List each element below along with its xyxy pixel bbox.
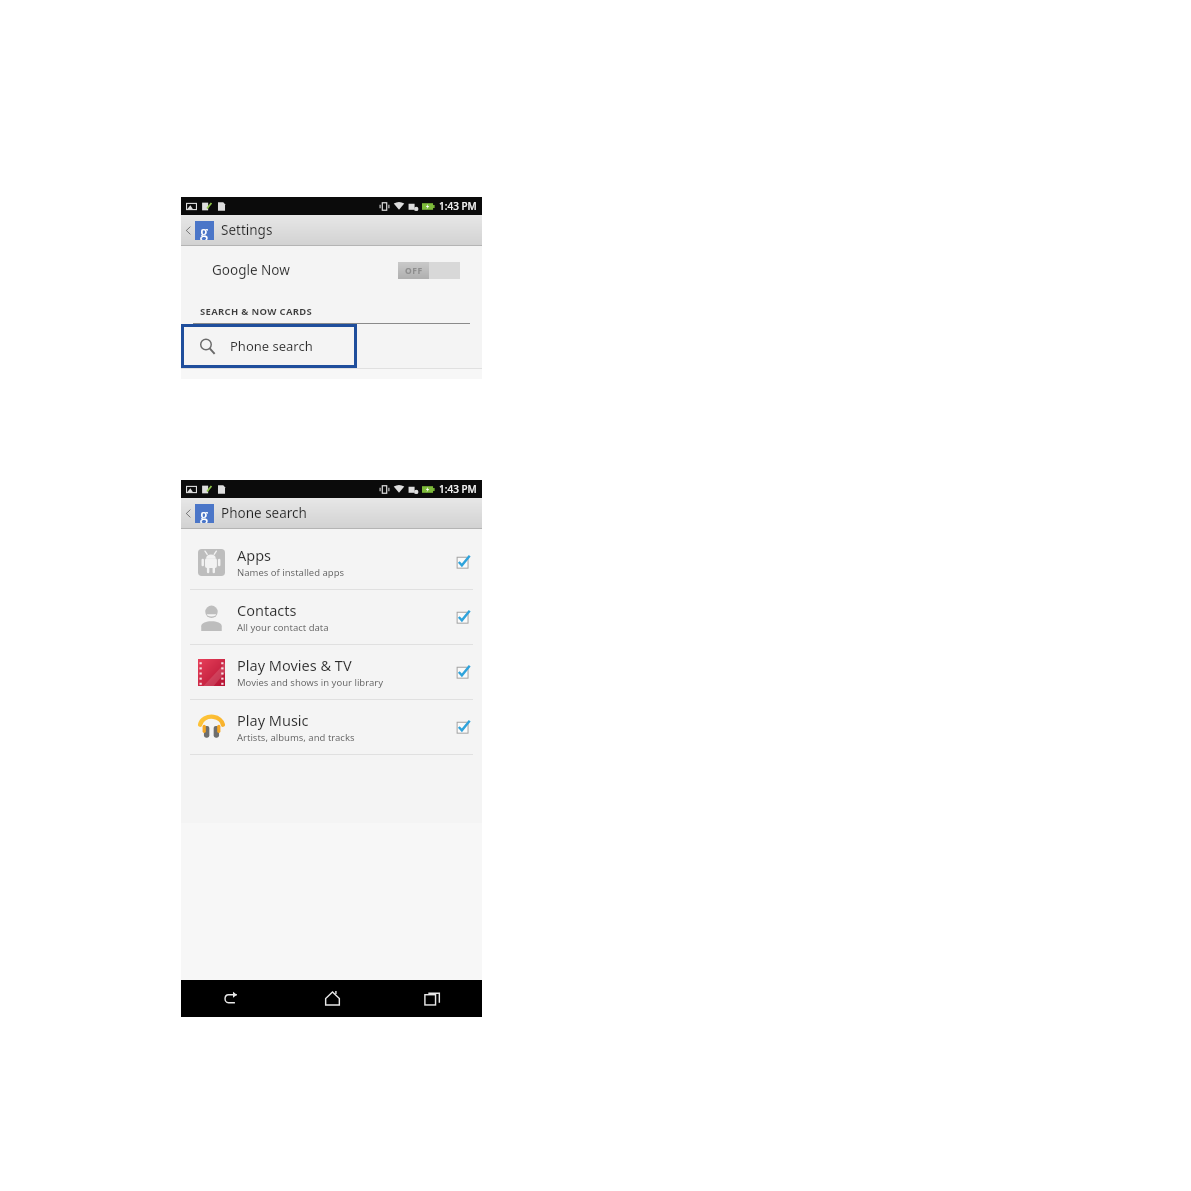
button[interactable]: Toggle Contacts (444, 590, 482, 644)
staticText: Phone search (221, 504, 307, 522)
button[interactable]: Toggle Play Music (444, 700, 482, 754)
staticText: 1:43 PM (439, 199, 477, 213)
button[interactable]: Toggle Apps (444, 535, 482, 589)
button[interactable]: Recents (382, 980, 482, 1017)
button[interactable]: Apps (181, 535, 482, 589)
button[interactable]: Back (181, 215, 195, 245)
staticText: g (200, 221, 209, 240)
staticText: Contacts (237, 600, 297, 620)
staticText: Play Music (237, 710, 309, 730)
staticText: Artists, albums, and tracks (237, 731, 355, 744)
staticText: Phone search (230, 337, 313, 355)
button[interactable]: Back (181, 498, 195, 528)
button[interactable]: Contacts (181, 590, 482, 644)
staticText: Play Movies & TV (237, 655, 352, 675)
staticText: All your contact data (237, 621, 329, 634)
button[interactable]: Google Now off (398, 262, 460, 279)
staticText: Google Now (212, 261, 290, 279)
staticText: SEARCH & NOW CARDS (200, 305, 313, 318)
button[interactable]: Home (282, 980, 382, 1017)
staticText: Movies and shows in your library (237, 676, 384, 689)
staticText: Settings (221, 221, 273, 239)
button[interactable]: Back (181, 980, 282, 1017)
staticText: Apps (237, 545, 272, 565)
button[interactable]: Phone search (181, 324, 357, 368)
staticText: OFF (405, 265, 423, 277)
button[interactable]: Toggle Play Movies & TV (444, 645, 482, 699)
staticText: g (200, 504, 209, 523)
button[interactable]: Google Now (181, 246, 482, 293)
staticText: 1:43 PM (439, 482, 477, 496)
button[interactable]: Play Movies & TV (181, 645, 482, 699)
staticText: Names of installed apps (237, 566, 345, 579)
button[interactable]: Play Music (181, 700, 482, 754)
